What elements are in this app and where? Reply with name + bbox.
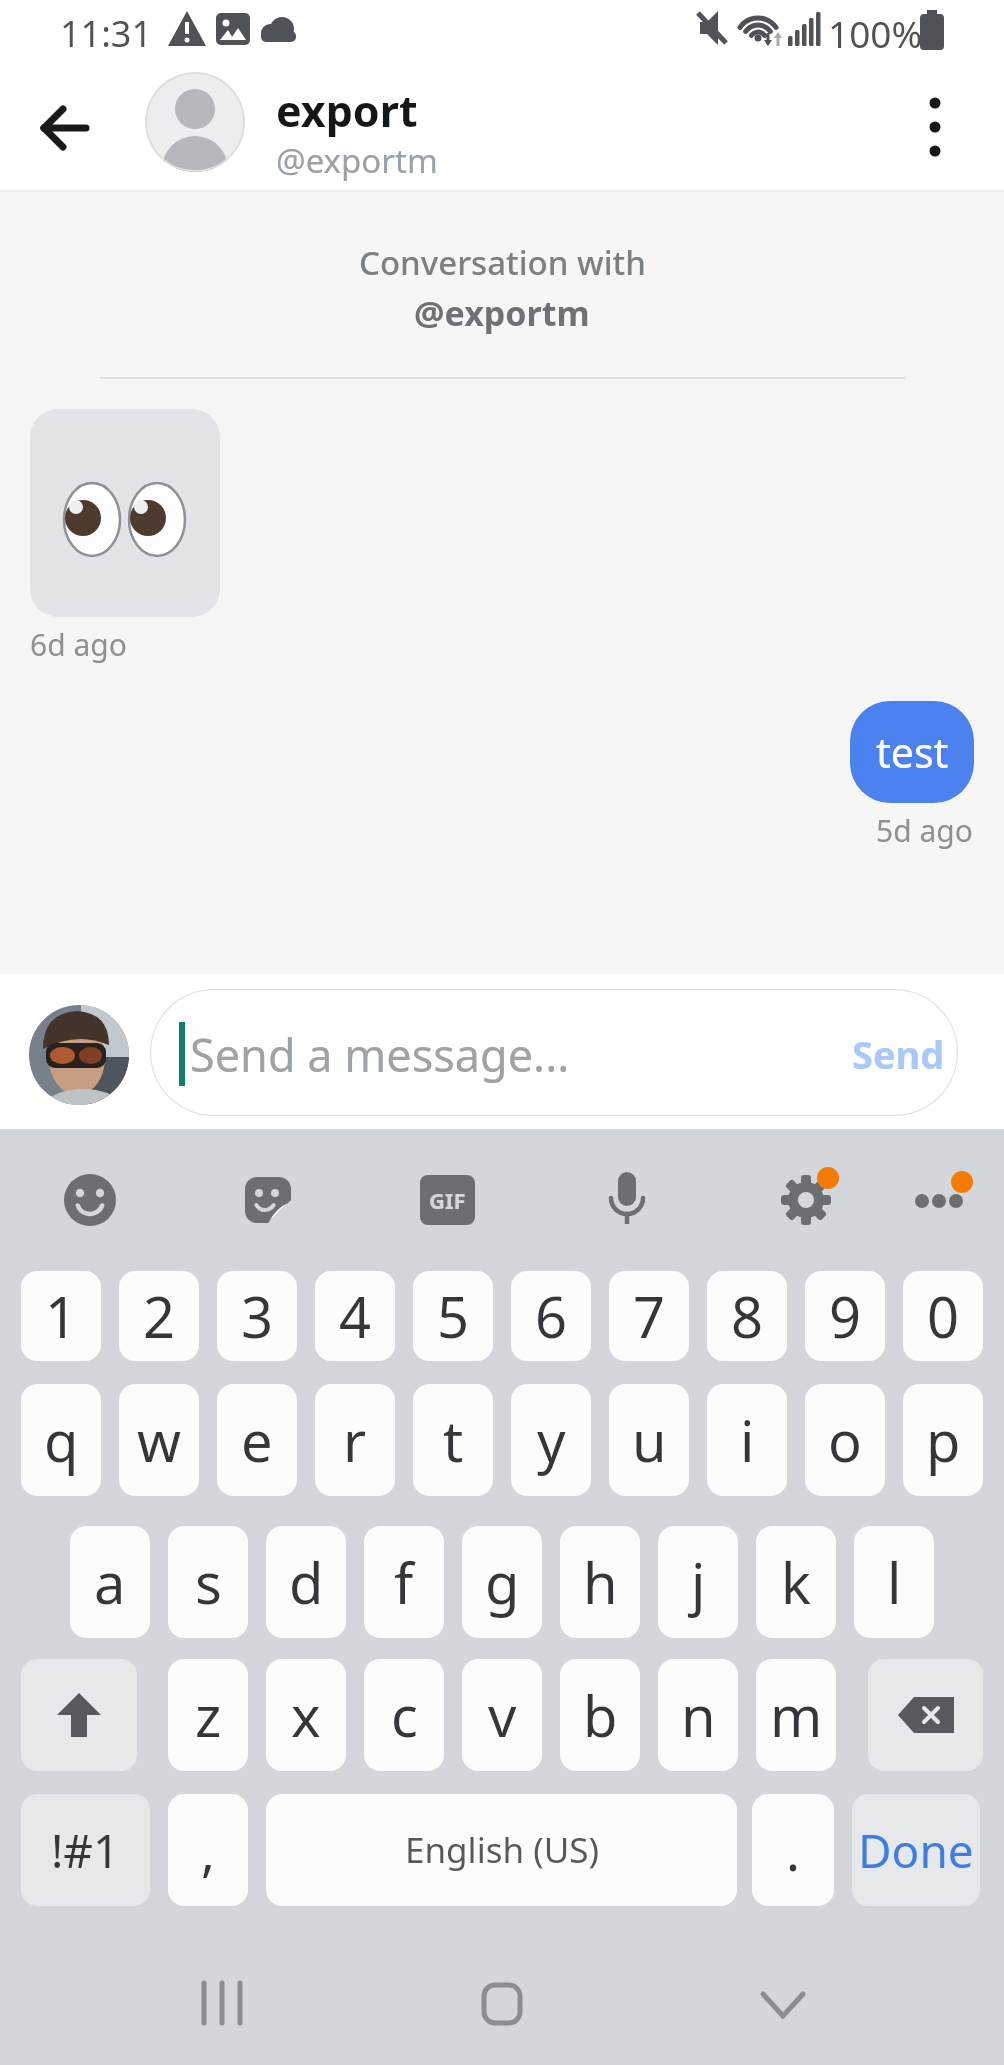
staticText: @exportm [414, 290, 590, 336]
button[interactable]: e [217, 1384, 297, 1496]
button[interactable]: 4 [315, 1271, 395, 1361]
button[interactable]: o [805, 1384, 885, 1496]
staticText: 7 [633, 1278, 666, 1354]
button[interactable]: k [756, 1526, 836, 1638]
button[interactable]: l [854, 1526, 934, 1638]
staticText: s [195, 1544, 222, 1620]
staticText: i [740, 1402, 755, 1478]
button[interactable] [750, 1975, 814, 2031]
button[interactable]: h [560, 1526, 640, 1638]
button[interactable]: j [658, 1526, 738, 1638]
staticText: 11:31 [60, 9, 153, 53]
staticText: . [786, 1815, 800, 1886]
staticText: h [583, 1544, 618, 1620]
staticText: m [770, 1677, 823, 1753]
staticText: , [201, 1815, 215, 1886]
button[interactable]: c [364, 1659, 444, 1771]
staticText: f [394, 1544, 414, 1620]
staticText: 2 [143, 1278, 176, 1354]
button[interactable]: p [903, 1384, 983, 1496]
button[interactable] [30, 409, 220, 617]
button[interactable]: d [266, 1526, 346, 1638]
button[interactable] [21, 1659, 137, 1771]
staticText: b [583, 1677, 618, 1753]
button[interactable] [60, 1170, 120, 1230]
button[interactable] [597, 1168, 657, 1228]
staticText: GIF [429, 1185, 466, 1215]
button[interactable]: s [168, 1526, 248, 1638]
button[interactable] [776, 1168, 840, 1232]
staticText: 9 [829, 1278, 862, 1354]
button[interactable]: 0 [903, 1271, 983, 1361]
staticText: Done [858, 1819, 974, 1882]
staticText: 5d ago [876, 810, 973, 851]
button[interactable]: f [364, 1526, 444, 1638]
button[interactable]: n [658, 1659, 738, 1771]
staticText: g [485, 1544, 520, 1620]
button[interactable]: z [168, 1659, 248, 1771]
button[interactable]: y [511, 1384, 591, 1496]
button[interactable]: !#1 [21, 1794, 150, 1906]
staticText: 0 [927, 1278, 960, 1354]
staticText: z [195, 1677, 222, 1753]
button[interactable]: 7 [609, 1271, 689, 1361]
button[interactable]: . [752, 1794, 834, 1906]
staticText: 8 [731, 1278, 764, 1354]
button[interactable]: Done [852, 1794, 980, 1906]
button[interactable] [905, 97, 965, 157]
button[interactable]: English (US) [266, 1794, 737, 1906]
staticText: 4 [339, 1278, 372, 1354]
staticText: o [828, 1402, 862, 1478]
staticText: t [443, 1402, 464, 1478]
button[interactable]: 1 [21, 1271, 101, 1361]
staticText: d [289, 1544, 324, 1620]
button[interactable] [150, 989, 958, 1116]
staticText: a [94, 1544, 126, 1620]
button[interactable]: 6 [511, 1271, 591, 1361]
button[interactable]: b [560, 1659, 640, 1771]
button[interactable] [868, 1659, 983, 1771]
staticText: e [241, 1402, 273, 1478]
staticText: r [343, 1402, 367, 1478]
staticText: l [887, 1544, 902, 1620]
staticText: test [876, 724, 949, 780]
staticText: w [137, 1402, 182, 1478]
button[interactable]: 2 [119, 1271, 199, 1361]
button[interactable]: , [168, 1794, 248, 1906]
button[interactable]: GIF [420, 1175, 475, 1225]
staticText: 100% [828, 8, 923, 52]
button[interactable]: m [756, 1659, 836, 1771]
staticText: 5 [437, 1278, 470, 1354]
staticText: v [488, 1677, 517, 1753]
staticText: 6 [535, 1278, 568, 1354]
button[interactable]: q [21, 1384, 101, 1496]
button[interactable] [900, 1168, 975, 1232]
staticText: 3 [241, 1278, 274, 1354]
button[interactable]: t [413, 1384, 493, 1496]
button[interactable]: i [707, 1384, 787, 1496]
staticText: q [44, 1402, 79, 1478]
staticText: u [632, 1402, 667, 1478]
button[interactable]: 5 [413, 1271, 493, 1361]
staticText: English (US) [405, 1826, 599, 1874]
button[interactable]: test [850, 701, 974, 803]
staticText: 1 [45, 1278, 78, 1354]
button[interactable] [30, 94, 98, 162]
button[interactable]: 8 [707, 1271, 787, 1361]
staticText: @exportm [276, 138, 438, 183]
button[interactable]: v [462, 1659, 542, 1771]
button[interactable]: r [315, 1384, 395, 1496]
button[interactable]: w [119, 1384, 199, 1496]
button[interactable] [238, 1170, 298, 1230]
staticText: export [276, 81, 418, 140]
button[interactable]: 9 [805, 1271, 885, 1361]
button[interactable]: 3 [217, 1271, 297, 1361]
button[interactable] [190, 1975, 254, 2031]
staticText: y [537, 1402, 566, 1478]
button[interactable]: a [70, 1526, 150, 1638]
button[interactable] [470, 1975, 534, 2031]
button[interactable]: g [462, 1526, 542, 1638]
button[interactable]: x [266, 1659, 346, 1771]
staticText: Send [852, 1028, 945, 1080]
button[interactable]: u [609, 1384, 689, 1496]
